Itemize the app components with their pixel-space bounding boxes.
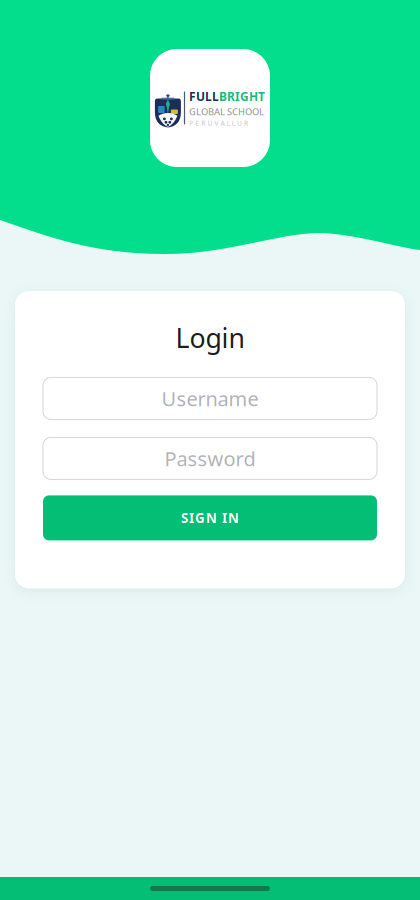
button[interactable]: Password [43,437,377,479]
staticText: SIGN IN [181,509,239,527]
button[interactable]: SIGN IN [43,495,377,540]
staticText: FULL [189,88,219,104]
staticText: PERUVALLUR [189,119,248,128]
staticText: Login [175,320,244,355]
staticText: BRIGHT [219,88,265,104]
staticText: Username [161,385,258,412]
button[interactable]: Username [43,377,377,419]
staticText: Password [164,445,255,472]
staticText: GLOBAL SCHOOL [189,105,264,118]
